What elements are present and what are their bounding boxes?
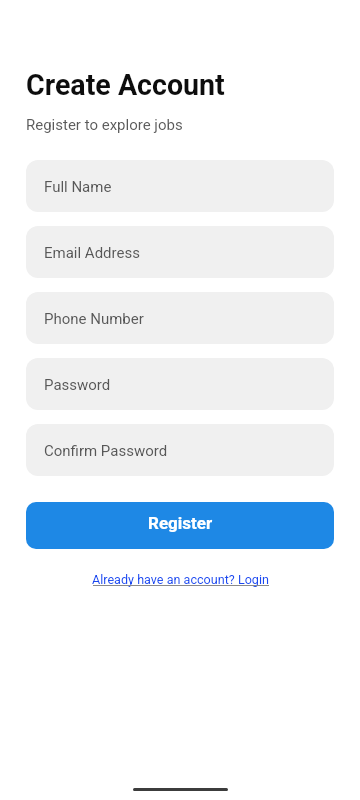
staticText: Already have an account? Login xyxy=(92,572,269,587)
staticText: Email Address xyxy=(44,244,140,262)
staticText: Phone Number xyxy=(44,310,144,328)
button[interactable]: Password xyxy=(26,358,334,410)
staticText: Full Name xyxy=(44,178,112,196)
staticText: Password xyxy=(44,376,111,394)
button[interactable]: Full Name xyxy=(26,160,334,212)
button[interactable]: Register xyxy=(26,502,334,549)
staticText: Confirm Password xyxy=(44,442,168,460)
button[interactable]: Phone Number xyxy=(26,292,334,344)
button[interactable]: Confirm Password xyxy=(26,424,334,476)
staticText: Create Account xyxy=(26,68,225,102)
staticText: Register xyxy=(148,513,213,533)
button[interactable]: Email Address xyxy=(26,226,334,278)
button[interactable]: Already have an account? Login xyxy=(92,572,269,588)
staticText: Register to explore jobs xyxy=(26,116,183,134)
